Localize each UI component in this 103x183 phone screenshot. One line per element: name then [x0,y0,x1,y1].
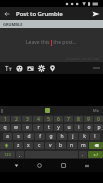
button[interactable]: 1 [0,116,10,122]
button[interactable]: x [24,142,33,149]
staticText: 9 [87,116,90,122]
staticText: . [82,152,84,157]
staticText: t [48,124,50,131]
button[interactable]: Backspace [89,142,103,149]
staticText: GRUMBLE [3,22,23,27]
button[interactable]: d [24,133,34,140]
staticText: l [94,133,96,140]
staticText: f [39,133,41,140]
button[interactable]: 6 [54,116,63,122]
staticText: b [59,142,63,149]
staticText: m [81,142,86,149]
button[interactable]: t [44,124,53,131]
staticText: a [6,133,9,140]
button[interactable]: Home [33,159,46,172]
button[interactable]: o [84,124,93,131]
staticText: Leave this [26,39,51,46]
button[interactable]: Location [47,63,58,74]
staticText: v [49,142,52,149]
staticText: r [37,124,40,131]
button[interactable]: 7 [64,116,73,122]
button[interactable]: e [22,124,32,131]
staticText: Post to Grumble [16,10,63,18]
button[interactable]: r [33,124,43,131]
button[interactable]: w [11,124,21,131]
button[interactable]: g [46,133,56,140]
staticText: 3 [26,116,29,122]
button[interactable]: Voice input [45,108,50,113]
button[interactable]: 3 [22,116,32,122]
button[interactable]: p [94,124,103,131]
button[interactable]: f [35,133,45,140]
button[interactable]: 2 [11,116,21,122]
staticText: o [87,124,91,131]
button[interactable]: l [90,133,100,140]
button[interactable]: Text format [3,63,14,74]
button[interactable]: k [79,133,89,140]
button[interactable]: u [64,124,73,131]
button[interactable]: z [14,142,23,149]
staticText: the post... [52,39,77,46]
button[interactable]: Back [10,159,23,172]
staticText: k [83,133,86,140]
button[interactable]: s [13,133,23,140]
button[interactable]: 9 [84,116,93,122]
button[interactable]: j [68,133,78,140]
button[interactable]: h [57,133,67,140]
button[interactable]: n [67,142,77,149]
staticText: u [67,124,71,131]
button[interactable]: m [78,142,88,149]
staticText: j [72,133,74,140]
staticText: c [38,142,41,149]
button[interactable]: Leave this [0,28,103,57]
button[interactable]: a [3,133,12,140]
button[interactable]: 8 [74,116,83,122]
button[interactable]: Keyboard switcher [80,159,93,172]
button[interactable]: 123 [0,151,15,158]
staticText: 123 [4,152,11,157]
button[interactable]: Back [0,7,13,20]
staticText: i [78,124,80,131]
button[interactable]: . [79,151,87,158]
button[interactable]: , [16,151,24,158]
button[interactable]: c [34,142,44,149]
button[interactable]: 0 [94,116,103,122]
button[interactable]: Enter [88,151,103,158]
staticText: 7 [67,116,70,122]
button[interactable]: i [74,124,83,131]
button[interactable]: Send [89,7,103,20]
button[interactable]: Settings [36,63,47,74]
staticText: p [97,124,101,131]
button[interactable]: y [54,124,63,131]
staticText: 5 [47,116,50,122]
button[interactable]: 4 [33,116,43,122]
staticText: , [19,152,21,157]
staticText: 2 [15,116,18,122]
staticText: Me [93,108,99,113]
staticText: n [70,142,74,149]
button[interactable]: Color [14,63,25,74]
button[interactable]: Insert image [25,63,36,74]
button[interactable]: 5 [44,116,53,122]
staticText: w [14,124,18,131]
staticText: q [3,124,7,131]
staticText: y [57,124,60,131]
staticText: 8 [77,116,80,122]
staticText: characters words lines [66,57,100,61]
button[interactable]: b [56,142,66,149]
staticText: x [27,142,30,149]
staticText: 1 [4,116,7,122]
staticText: 4 [37,116,40,122]
button[interactable]: v [45,142,55,149]
button[interactable]: Recent apps [57,159,70,172]
staticText: h [60,133,64,140]
button[interactable]: q [0,124,10,131]
staticText: s [17,133,20,140]
staticText: 0 [97,116,100,122]
staticText: 6 [57,116,60,122]
staticText: e [26,124,29,131]
button[interactable]: Shift [0,142,13,149]
staticText: d [27,133,31,140]
